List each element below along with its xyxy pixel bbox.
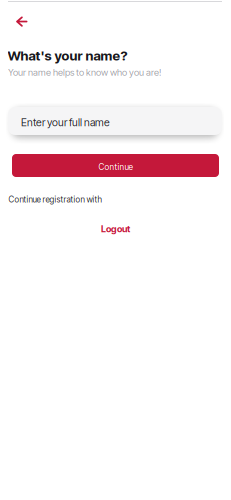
staticText: Continue [98,162,132,172]
staticText: Your name helps to know who you are! [8,67,161,78]
button[interactable]: Logout [0,223,231,235]
staticText: Logout [101,223,130,234]
button[interactable]: Back [9,11,35,33]
staticText: Enter your full name [21,116,110,129]
button[interactable]: Continue [12,154,219,177]
staticText: Continue registration with [8,195,102,205]
staticText: What's your name? [7,48,127,64]
